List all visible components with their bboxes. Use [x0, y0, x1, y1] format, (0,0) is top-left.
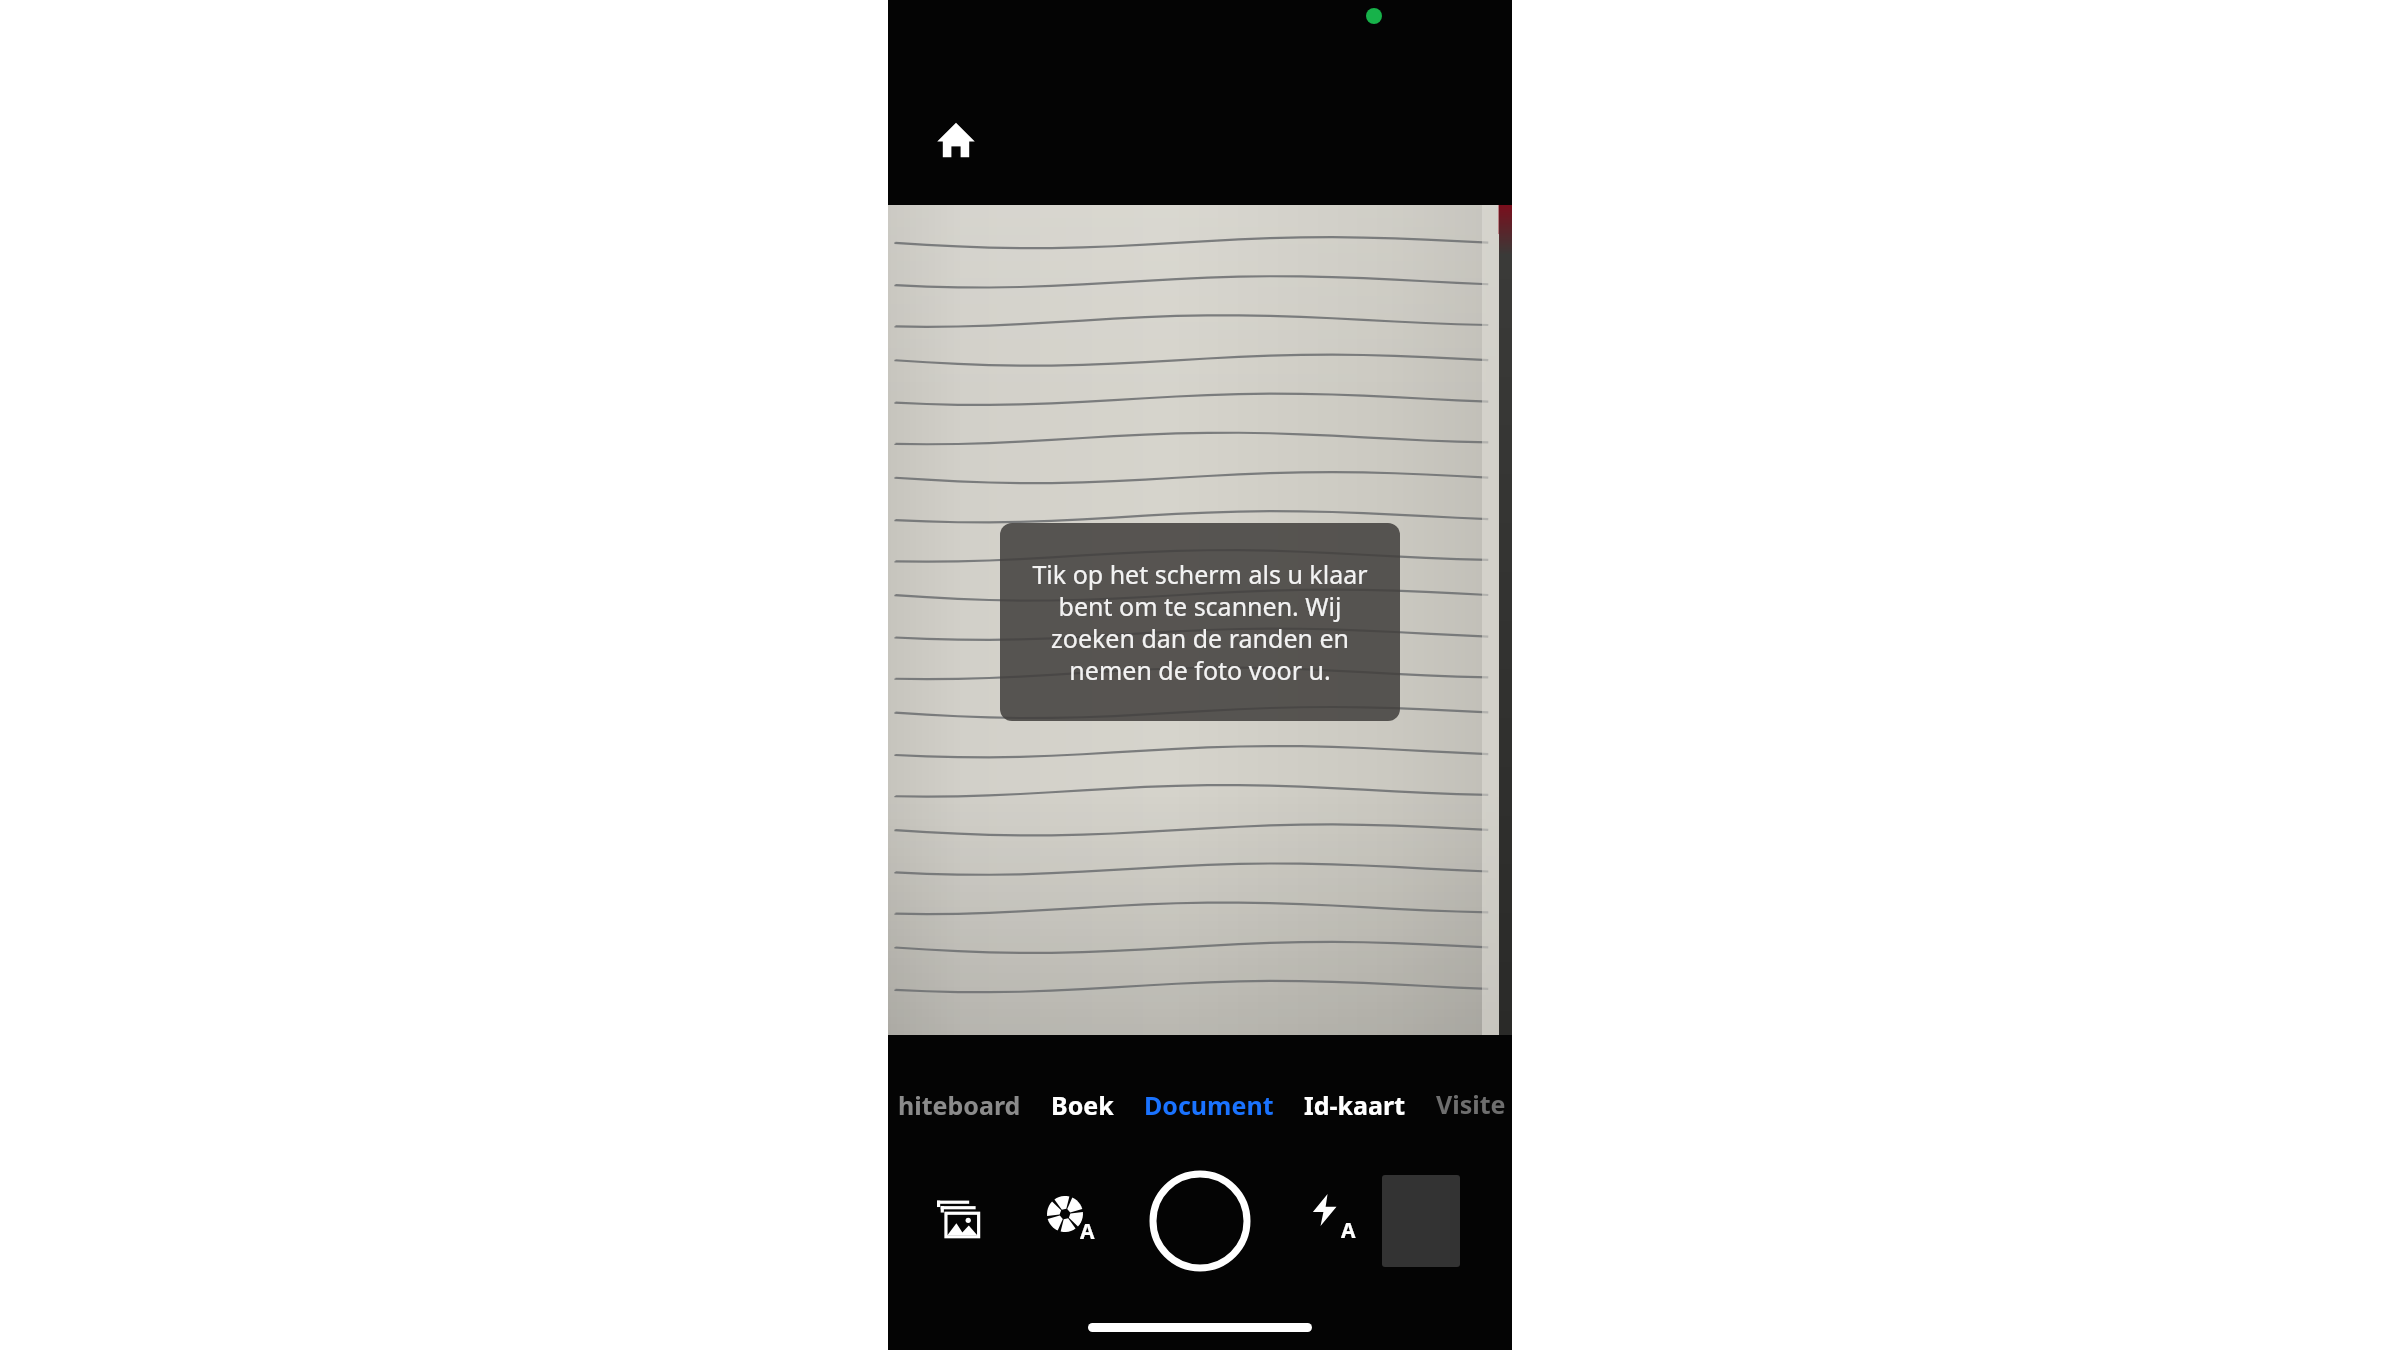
button[interactable]: Boek	[1049, 1082, 1116, 1128]
staticText: hiteboard	[898, 1088, 1021, 1122]
button[interactable]: Visitel	[1434, 1081, 1512, 1129]
button[interactable]: Take photo	[1146, 1167, 1254, 1275]
staticText: A	[1080, 1217, 1095, 1246]
staticText: Boek	[1051, 1088, 1114, 1122]
button[interactable]: Id-kaart	[1302, 1082, 1408, 1128]
staticText: A	[1341, 1216, 1356, 1245]
staticText: Visitel	[1436, 1087, 1510, 1123]
staticText: Tik op het scherm als u klaar bent om te…	[1022, 557, 1378, 687]
button[interactable]: Shutter mode auto	[1032, 1179, 1112, 1259]
button[interactable]: Gallery	[920, 1179, 1000, 1259]
staticText: Document	[1144, 1088, 1274, 1122]
button[interactable]: Flash auto	[1292, 1179, 1372, 1259]
button[interactable]: Tik op het scherm als u klaar bent om te…	[1000, 523, 1400, 721]
staticText: Id-kaart	[1304, 1088, 1406, 1122]
button[interactable]: Home	[922, 106, 990, 174]
button[interactable]: hiteboard	[896, 1082, 1023, 1128]
button[interactable]: Document	[1142, 1082, 1276, 1128]
